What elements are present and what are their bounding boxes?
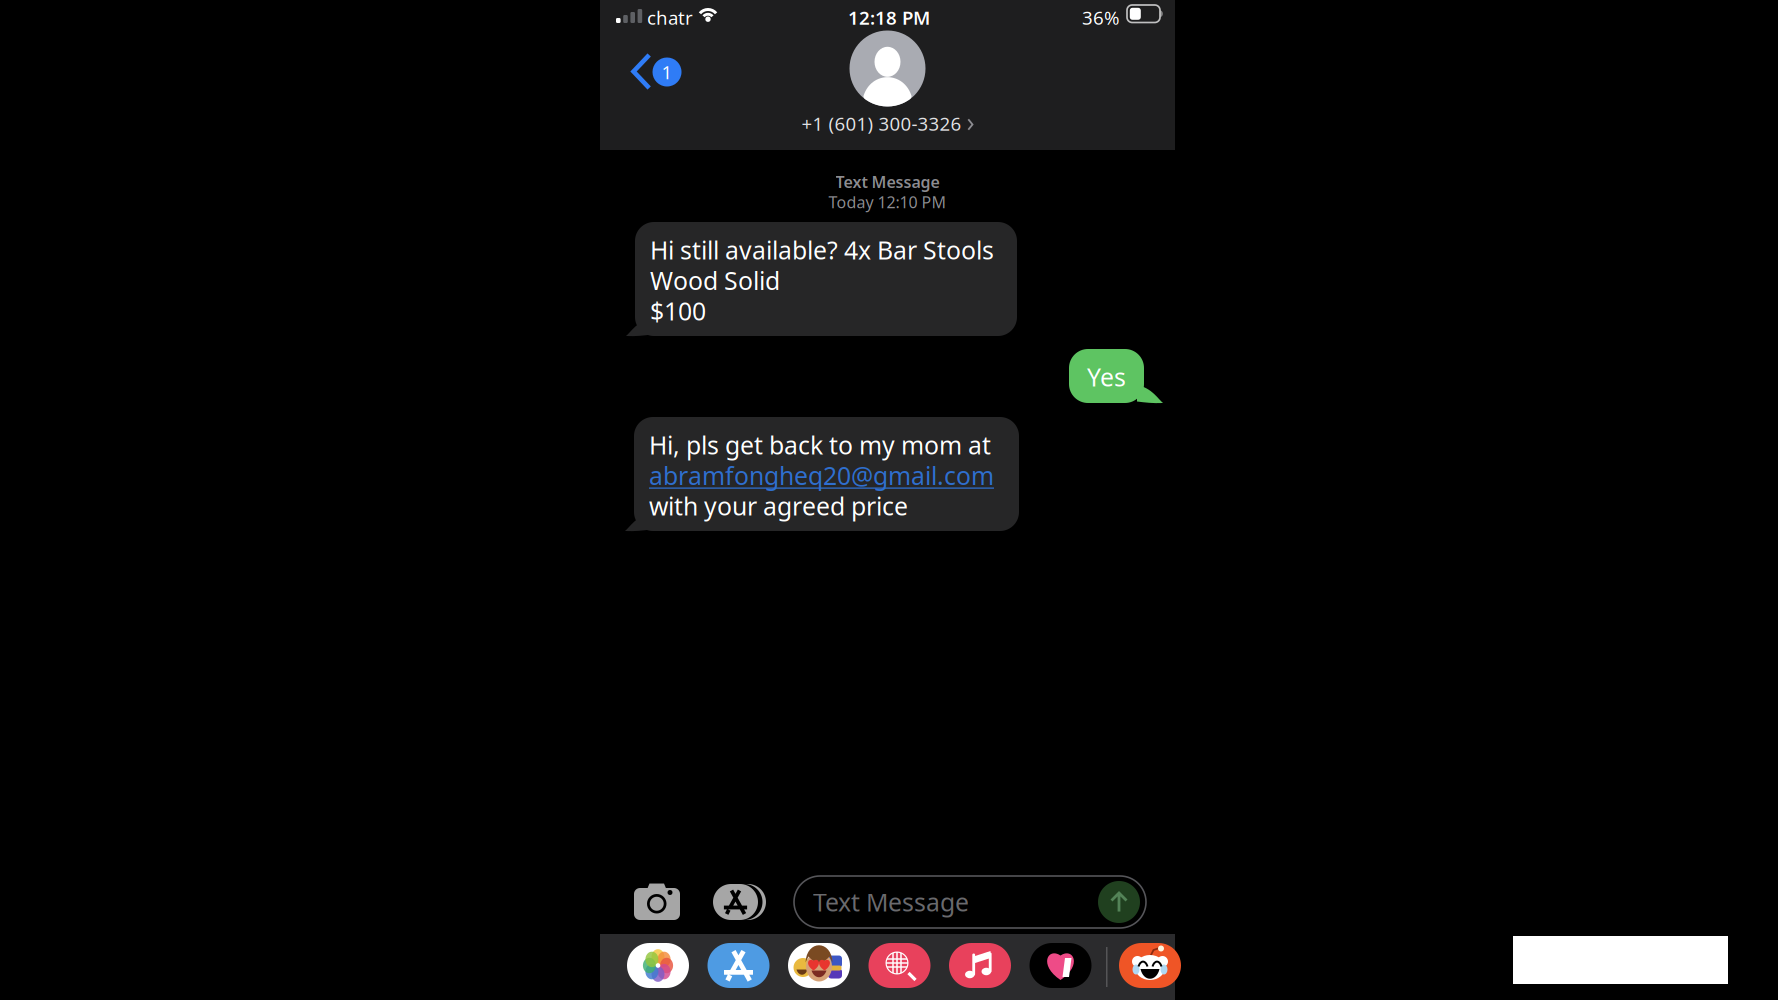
- button[interactable]: Conversation details: [762, 28, 1012, 138]
- staticText: Hi, pls get back to my mom at: [649, 428, 991, 462]
- staticText: $100: [650, 294, 706, 328]
- button[interactable]: Images: [868, 943, 930, 988]
- button[interactable]: Memoji: [788, 943, 850, 988]
- button[interactable]: App Store: [707, 943, 769, 988]
- staticText: Today 12:10 PM: [828, 191, 946, 213]
- button[interactable]: Reddit: [1119, 943, 1181, 988]
- staticText: 1: [661, 60, 672, 84]
- button[interactable]: Camera: [634, 883, 680, 920]
- staticText: Wood Solid: [650, 263, 780, 297]
- button[interactable]: Apps: [713, 884, 767, 920]
- staticText: abramfongheq20@gmail.com: [649, 458, 994, 492]
- staticText: 12:18 PM: [848, 5, 930, 30]
- staticText: Hi still available? 4x Bar Stools: [650, 233, 994, 267]
- button[interactable]: Back: [632, 55, 688, 95]
- staticText: 36%: [1082, 5, 1120, 30]
- staticText: with your agreed price: [649, 489, 908, 523]
- button[interactable]: Send: [1097, 880, 1141, 924]
- button[interactable]: Photos: [627, 943, 689, 988]
- staticText: chatr: [647, 5, 693, 30]
- button[interactable]: Music: [949, 943, 1011, 988]
- staticText: Text Message: [835, 171, 939, 192]
- staticText: Text Message: [813, 885, 969, 919]
- staticText: +1 (601) 300-3326: [801, 111, 961, 136]
- button[interactable]: Fitness: [1029, 943, 1091, 988]
- staticText: Yes: [1087, 360, 1126, 394]
